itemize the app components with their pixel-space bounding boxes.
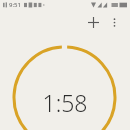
button[interactable]: More options [104,12,124,32]
button[interactable]: Add timer [83,12,103,32]
staticText: 1:58 [42,87,88,118]
staticText: 9:51 [9,1,21,9]
button[interactable]: 1:58 [0,0,130,130]
